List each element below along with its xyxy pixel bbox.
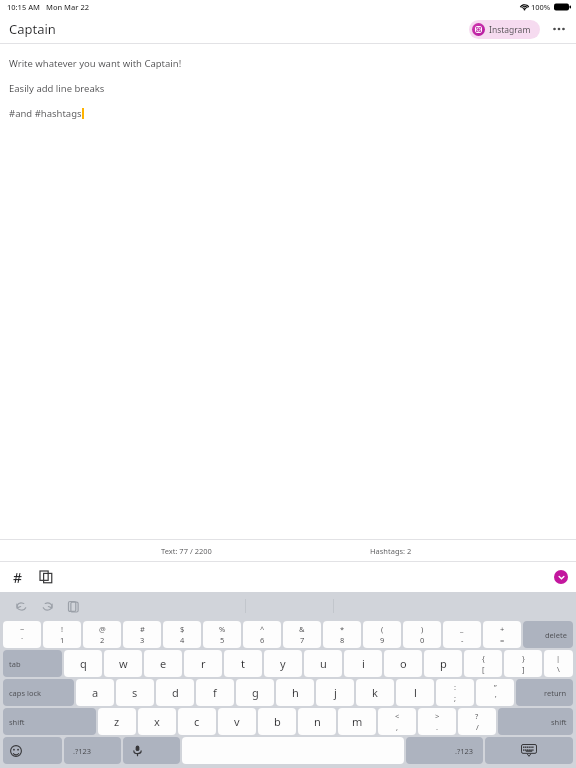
button[interactable]: ? — [458, 708, 496, 735]
staticText: ’ — [495, 693, 497, 703]
button[interactable]: n — [298, 708, 336, 735]
button[interactable]: o — [384, 650, 422, 677]
staticText: .?123 — [73, 746, 92, 756]
button[interactable]: a — [76, 679, 114, 706]
button[interactable]: g — [236, 679, 274, 706]
button[interactable]: k — [356, 679, 394, 706]
button[interactable]: d — [156, 679, 194, 706]
button[interactable]: Redo — [38, 597, 56, 615]
button[interactable]: u — [304, 650, 342, 677]
staticText: 1 — [60, 635, 65, 645]
button[interactable]: : — [436, 679, 474, 706]
button[interactable]: f — [196, 679, 234, 706]
button[interactable]: delete — [523, 621, 573, 648]
staticText: ] — [522, 664, 525, 674]
button[interactable]: + — [483, 621, 521, 648]
staticText: | — [556, 653, 561, 663]
staticText: y — [280, 656, 286, 671]
button[interactable]: $ — [163, 621, 201, 648]
staticText: $ — [180, 624, 185, 634]
button[interactable]: < — [378, 708, 416, 735]
staticText: e — [160, 656, 167, 671]
staticText: ( — [381, 624, 384, 634]
staticText: ~ — [20, 624, 25, 634]
button[interactable]: e — [144, 650, 182, 677]
button[interactable]: x — [138, 708, 176, 735]
button[interactable]: Paste — [64, 597, 82, 615]
staticText: p — [440, 656, 447, 671]
staticText: ` — [21, 635, 24, 645]
staticText: @ — [99, 624, 106, 634]
button[interactable]: i — [344, 650, 382, 677]
button[interactable]: z — [98, 708, 136, 735]
button[interactable]: caps lock — [3, 679, 74, 706]
staticText: shift — [551, 717, 567, 727]
staticText: * — [340, 624, 345, 634]
button[interactable]: Copy — [36, 567, 56, 587]
button[interactable]: h — [276, 679, 314, 706]
button[interactable]: q — [64, 650, 102, 677]
button[interactable]: s — [116, 679, 154, 706]
button[interactable]: Hide keyboard — [485, 737, 573, 764]
staticText: h — [292, 685, 299, 700]
button[interactable]: Insert hashtag — [8, 567, 28, 587]
button[interactable]: shift — [498, 708, 573, 735]
button[interactable]: l — [396, 679, 434, 706]
button[interactable]: p — [424, 650, 462, 677]
button[interactable]: > — [418, 708, 456, 735]
staticText: 10:15 AM — [7, 2, 40, 12]
button[interactable]: ( — [363, 621, 401, 648]
button[interactable]: y — [264, 650, 302, 677]
button[interactable]: } — [504, 650, 542, 677]
button[interactable]: { — [464, 650, 502, 677]
button[interactable]: .?123 — [64, 737, 121, 764]
button[interactable]: return — [516, 679, 573, 706]
staticText: b — [274, 714, 281, 729]
button[interactable]: & — [283, 621, 321, 648]
button[interactable]: Emoji — [3, 737, 62, 764]
button[interactable]: | — [544, 650, 573, 677]
staticText: g — [252, 685, 259, 700]
staticText: _ — [460, 624, 464, 634]
staticText: caps lock — [9, 688, 42, 698]
button[interactable]: b — [258, 708, 296, 735]
button[interactable]: c — [178, 708, 216, 735]
button[interactable]: ! — [43, 621, 81, 648]
button[interactable]: ~ — [3, 621, 41, 648]
button[interactable]: _ — [443, 621, 481, 648]
staticText: m — [352, 714, 363, 729]
staticText: ? — [475, 711, 479, 721]
staticText: ; — [454, 693, 457, 703]
button[interactable]: * — [323, 621, 361, 648]
staticText: k — [372, 685, 378, 700]
button[interactable]: % — [203, 621, 241, 648]
staticText: 3 — [140, 635, 145, 645]
button[interactable]: v — [218, 708, 256, 735]
button[interactable]: More options — [549, 19, 569, 39]
button[interactable]: .?123 — [406, 737, 483, 764]
button[interactable]: Dictate — [123, 737, 180, 764]
button[interactable]: ” — [476, 679, 514, 706]
button[interactable]: w — [104, 650, 142, 677]
button[interactable]: Instagram — [469, 20, 540, 39]
staticText: delete — [545, 630, 567, 640]
staticText: 2 — [100, 635, 105, 645]
staticText: & — [299, 624, 305, 634]
button[interactable]: @ — [83, 621, 121, 648]
button[interactable]: ^ — [243, 621, 281, 648]
button[interactable]: t — [224, 650, 262, 677]
staticText: ! — [61, 624, 64, 634]
staticText: c — [194, 714, 200, 729]
button[interactable]: Undo — [12, 597, 30, 615]
button[interactable]: Collapse — [554, 570, 568, 584]
button[interactable]: # — [123, 621, 161, 648]
button[interactable]: shift — [3, 708, 96, 735]
staticText: / — [476, 722, 479, 732]
button[interactable]: r — [184, 650, 222, 677]
staticText: Text: 77 / 2200 — [161, 546, 212, 556]
button[interactable]: tab — [3, 650, 62, 677]
button[interactable]: ) — [403, 621, 441, 648]
button[interactable]: m — [338, 708, 376, 735]
button[interactable]: j — [316, 679, 354, 706]
